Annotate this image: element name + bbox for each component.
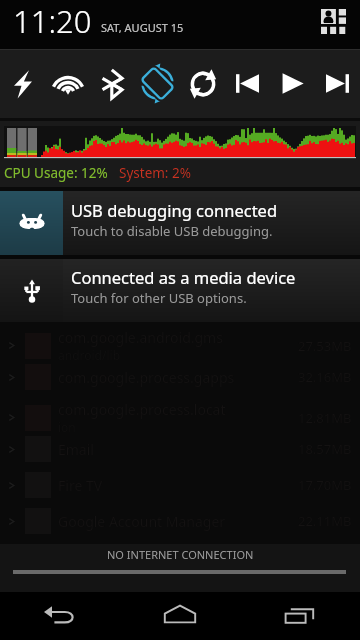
staticText: USB debugging connected [71, 199, 278, 221]
button[interactable]: Auto rotate [135, 49, 180, 118]
button[interactable]: Home [120, 592, 240, 640]
staticText: 11:20 [13, 0, 92, 42]
button[interactable]: Wi-Fi [45, 49, 90, 118]
button[interactable]: USB debugging connected [0, 191, 360, 255]
button[interactable]: Previous track [225, 49, 270, 118]
staticText: CPU Usage: 12% [4, 164, 108, 182]
button[interactable]: Connected as a media device [0, 259, 360, 322]
button[interactable]: Quick settings [314, 2, 352, 40]
button[interactable]: Sync [180, 49, 225, 118]
button[interactable]: Play [270, 49, 315, 118]
button[interactable]: Flashlight [0, 49, 45, 118]
staticText: System: 2% [119, 164, 191, 182]
staticText: SAT, AUGUST 15 [101, 20, 184, 35]
staticText: Touch for other USB options. [71, 289, 247, 307]
button[interactable]: Back [0, 592, 120, 640]
staticText: Connected as a media device [71, 266, 296, 288]
staticText: Touch to disable USB debugging. [71, 222, 273, 240]
staticText: NO INTERNET CONNECTION [107, 547, 254, 562]
button[interactable]: Bluetooth [90, 49, 135, 118]
button[interactable]: Next track [315, 49, 360, 118]
button[interactable]: Recent apps [240, 592, 360, 640]
